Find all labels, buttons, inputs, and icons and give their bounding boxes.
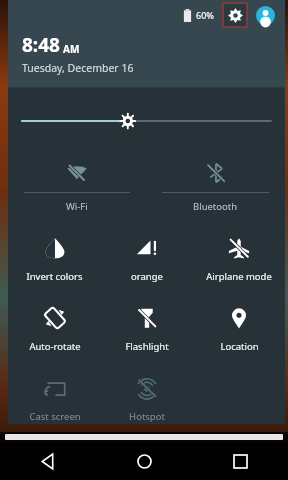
staticText: Wi-Fi [66,200,88,213]
staticText: Auto-rotate [29,340,81,353]
button[interactable]: Home [96,442,192,480]
button[interactable]: Flashlight [101,297,193,367]
button[interactable]: orange [101,227,193,297]
button[interactable]: Airplane mode [193,227,285,297]
button[interactable]: Location [193,297,285,367]
staticText: Location [220,340,259,353]
button[interactable]: Settings [223,3,247,27]
staticText: Hotspot [129,410,165,423]
button[interactable]: Auto-rotate [8,297,101,367]
staticText: Bluetooth [193,200,238,213]
staticText: Invert colors [26,270,83,283]
button[interactable]: Invert colors [8,227,101,297]
staticText: Flashlight [125,340,169,353]
staticText: 60% [196,9,214,21]
staticText: Tuesday, December 16 [22,61,134,75]
button[interactable]: Cast screen [8,367,101,424]
staticText: Cast screen [29,410,81,423]
button[interactable]: User [256,6,275,25]
button[interactable]: Wi-Fi [8,154,146,227]
button[interactable]: Recents [192,442,288,480]
button[interactable]: Brightness [22,104,271,138]
button[interactable]: Back [0,442,96,480]
staticText: AM [63,42,80,56]
staticText: Airplane mode [206,270,272,283]
button[interactable]: Bluetooth [146,154,285,227]
staticText: orange [131,270,163,283]
button[interactable]: Hotspot [101,367,193,424]
staticText: 8:48 [22,32,60,58]
